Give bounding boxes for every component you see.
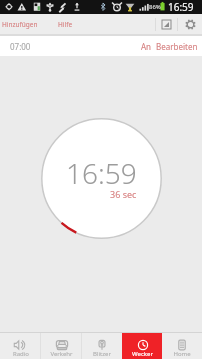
staticText: Home [173,350,191,358]
button[interactable]: 07:00 [0,36,202,56]
button[interactable]: Verkehr [41,333,82,359]
staticText: Verkehr [50,350,73,358]
button[interactable]: Hinzufügen [0,14,40,34]
button[interactable]: Wecker [122,333,162,359]
staticText: 07:00 [10,41,31,52]
staticText: 16:59 [66,154,137,192]
button[interactable]: Settings [178,14,202,34]
button[interactable]: Hilfe [56,14,75,34]
button[interactable]: Radio [0,333,41,359]
staticText: 86% [149,3,161,11]
staticText: An [141,41,152,52]
button[interactable]: Display brightness [156,14,177,34]
staticText: 16:59 [168,0,194,14]
staticText: Bearbeiten [156,41,198,52]
staticText: Radio [13,350,29,358]
staticText: Hinzufügen [2,20,38,29]
staticText: Wecker [132,350,153,358]
staticText: Hilfe [58,20,73,29]
staticText: Blitzer [93,350,111,358]
button[interactable]: Blitzer [82,333,122,359]
staticText: 36 sec [110,188,137,200]
button[interactable]: Home [162,333,202,359]
